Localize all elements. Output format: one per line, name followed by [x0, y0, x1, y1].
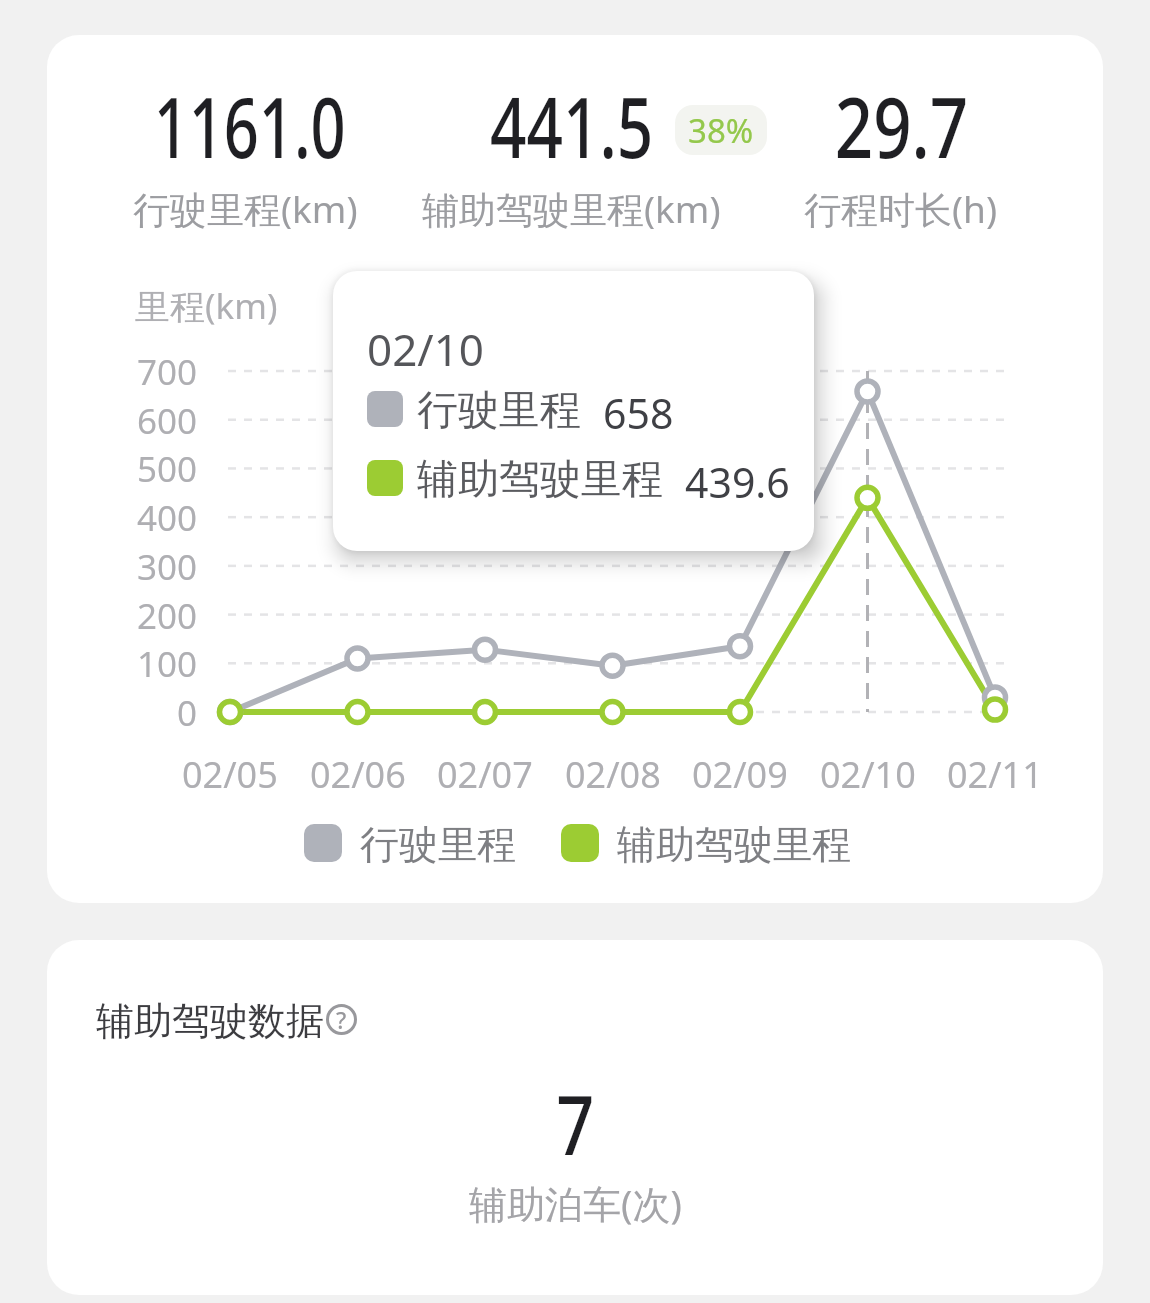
staticText: 100: [137, 640, 198, 686]
staticText: 行驶里程(km): [133, 183, 358, 233]
staticText: 500: [137, 445, 198, 491]
staticText: 38%: [688, 108, 754, 153]
staticText: 辅助驾驶数据: [96, 997, 324, 1045]
staticText: 辅助驾驶里程(km): [422, 183, 721, 233]
staticText: 02/10: [367, 319, 485, 379]
staticText: 7: [556, 1068, 595, 1178]
staticText: 02/08: [565, 750, 661, 799]
staticText: 辅助驾驶里程: [617, 820, 851, 868]
staticText: 700: [137, 348, 198, 394]
staticText: 辅助泊车(次): [469, 1177, 682, 1227]
staticText: 02/05: [182, 750, 278, 799]
staticText: 441.5: [490, 68, 654, 168]
button[interactable]: 38%: [675, 105, 767, 155]
staticText: 02/09: [692, 750, 788, 799]
staticText: 行程时长(h): [804, 183, 998, 233]
staticText: 02/10: [820, 750, 916, 799]
staticText: 600: [137, 397, 198, 443]
staticText: 行驶里程: [360, 820, 516, 868]
staticText: 02/06: [310, 750, 406, 799]
staticText: 02/07: [437, 750, 533, 799]
staticText: 辅助驾驶里程: [417, 454, 663, 502]
staticText: 1161.0: [154, 68, 346, 168]
button[interactable]: 02/10: [333, 271, 814, 551]
staticText: 29.7: [835, 68, 968, 168]
staticText: 658: [603, 385, 674, 433]
staticText: 200: [137, 592, 198, 638]
button[interactable]: ?: [326, 1004, 357, 1035]
staticText: ?: [336, 1004, 347, 1035]
staticText: 0: [177, 689, 198, 735]
staticText: 里程(km): [135, 282, 278, 330]
staticText: 02/11: [947, 750, 1043, 799]
staticText: 300: [137, 543, 198, 589]
staticText: 439.6: [685, 454, 790, 502]
staticText: 行驶里程: [417, 385, 581, 433]
staticText: 400: [137, 494, 198, 540]
